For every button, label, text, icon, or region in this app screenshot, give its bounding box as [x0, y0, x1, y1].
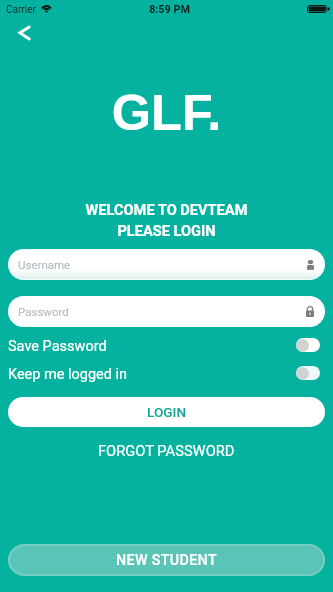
button[interactable]: Back: [12, 21, 36, 45]
button[interactable]: Password: [8, 296, 325, 327]
other: Save Password: [296, 338, 320, 352]
button[interactable]: NEW STUDENT: [10, 546, 323, 574]
staticText: Username: [18, 258, 71, 271]
staticText: PLEASE LOGIN: [0, 222, 333, 239]
staticText: NEW STUDENT: [116, 552, 217, 569]
button[interactable]: Username: [8, 249, 325, 280]
button[interactable]: Keep me logged in: [0, 366, 333, 388]
staticText: FORGOT PASSWORD: [98, 442, 235, 459]
staticText: LOGIN: [147, 404, 187, 420]
staticText: Carrier: [6, 4, 36, 16]
staticText: Password: [18, 305, 69, 318]
staticText: Save Password: [8, 338, 107, 355]
staticText: GLF.: [0, 84, 333, 140]
button[interactable]: LOGIN: [8, 397, 325, 427]
button[interactable]: FORGOT PASSWORD: [0, 438, 333, 462]
staticText: Keep me logged in: [8, 366, 128, 383]
staticText: 8:59 PM: [3, 3, 333, 16]
other: Keep me logged in: [296, 366, 320, 380]
staticText: WELCOME TO DEVTEAM: [0, 201, 333, 218]
button[interactable]: Save Password: [0, 338, 333, 360]
